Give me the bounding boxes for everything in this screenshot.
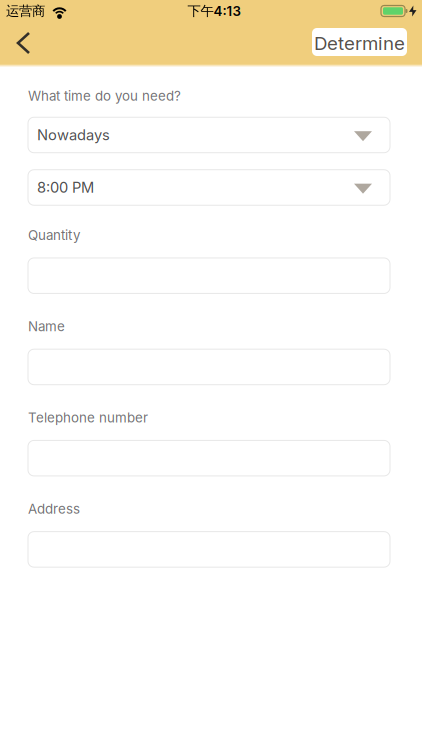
button[interactable]: Back bbox=[0, 22, 49, 64]
staticText: 下午4:13 bbox=[187, 3, 240, 19]
staticText: Telephone number bbox=[28, 410, 148, 425]
button[interactable]: Name bbox=[28, 349, 390, 385]
button[interactable]: 8:00 PM bbox=[28, 170, 390, 205]
staticText: Name bbox=[28, 318, 65, 334]
staticText: Quantity bbox=[28, 227, 80, 243]
staticText: What time do you need? bbox=[28, 88, 181, 104]
button[interactable]: Quantity bbox=[28, 258, 390, 293]
staticText: 8:00 PM bbox=[37, 179, 94, 196]
staticText: Determine bbox=[314, 32, 405, 54]
staticText: Address bbox=[28, 501, 80, 517]
button[interactable]: Telephone number bbox=[28, 440, 390, 476]
staticText: 运营商 bbox=[6, 3, 45, 19]
staticText: Nowadays bbox=[37, 126, 110, 144]
button[interactable]: Nowadays bbox=[28, 117, 390, 153]
button[interactable]: Determine bbox=[312, 28, 407, 58]
